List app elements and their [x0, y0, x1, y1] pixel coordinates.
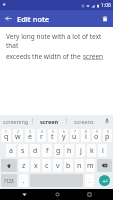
button[interactable]: v — [53, 159, 62, 172]
button[interactable]: screens — [67, 115, 100, 127]
staticText: e — [28, 132, 32, 142]
staticText: 9 — [96, 130, 98, 134]
button[interactable]: 6 — [59, 129, 68, 142]
staticText: s — [21, 146, 25, 156]
staticText: 4 — [41, 130, 43, 134]
button[interactable]: g — [54, 144, 63, 157]
staticText: a — [9, 146, 13, 156]
button[interactable]: a — [6, 144, 16, 157]
button[interactable]: c — [42, 159, 51, 172]
staticText: 0 — [107, 130, 109, 134]
button[interactable]: Delete note — [100, 14, 109, 23]
staticText: w — [15, 132, 21, 142]
staticText: x — [34, 161, 38, 171]
staticText: 2 — [17, 130, 19, 134]
button[interactable]: l — [98, 144, 107, 157]
staticText: u — [72, 132, 77, 142]
button[interactable]: x — [31, 159, 40, 172]
button[interactable]: k — [87, 144, 96, 157]
button[interactable]: 3 — [25, 129, 35, 142]
staticText: k — [90, 146, 94, 156]
staticText: 1:06 — [101, 2, 111, 9]
button[interactable]: screening — [0, 115, 32, 127]
button[interactable]: n — [75, 159, 84, 172]
staticText: Very long note with a lot of text that — [6, 32, 107, 50]
staticText: 7 — [74, 130, 76, 134]
button[interactable]: Recent apps — [81, 189, 97, 200]
button[interactable]: Enter — [96, 174, 112, 187]
button[interactable]: 7 — [70, 129, 79, 142]
staticText: z — [22, 161, 26, 171]
staticText: screens — [74, 118, 94, 125]
staticText: o — [94, 132, 99, 142]
staticText: 8 — [85, 130, 87, 134]
staticText: . — [89, 177, 91, 185]
staticText: 5 — [52, 130, 54, 134]
staticText: d — [33, 146, 38, 156]
button[interactable]: s — [18, 144, 28, 157]
button[interactable]: 0 — [103, 129, 112, 142]
button[interactable]: 8 — [81, 129, 90, 142]
staticText: screen — [40, 118, 59, 125]
button[interactable]: Very long note with a lot of text that — [0, 27, 113, 115]
button[interactable]: z — [19, 159, 29, 172]
staticText: b — [66, 161, 71, 171]
button[interactable]: j — [76, 144, 85, 157]
button[interactable]: h — [65, 144, 74, 157]
staticText: 3 — [29, 130, 31, 134]
staticText: y — [62, 132, 66, 142]
staticText: exceeds the width of the — [6, 52, 83, 61]
staticText: i — [85, 132, 87, 142]
button[interactable]: Shift — [1, 159, 17, 172]
button[interactable]: m — [86, 159, 95, 172]
staticText: r — [40, 132, 43, 142]
button[interactable]: 2 — [13, 129, 23, 142]
staticText: g — [56, 146, 61, 156]
button[interactable]: 1 — [1, 129, 11, 142]
staticText: j — [80, 146, 82, 156]
button[interactable]: d — [30, 144, 40, 157]
staticText: screen — [83, 52, 104, 61]
staticText: Edit note — [17, 14, 50, 24]
button[interactable]: f — [42, 144, 52, 157]
staticText: f — [46, 146, 49, 156]
button[interactable]: , — [19, 174, 28, 187]
staticText: c — [45, 161, 49, 171]
button[interactable]: Backspace — [97, 159, 112, 172]
button[interactable]: screen — [33, 115, 66, 127]
button[interactable]: Voice input — [100, 115, 113, 127]
staticText: t — [51, 132, 54, 142]
staticText: 1 — [5, 130, 7, 134]
staticText: l — [102, 146, 104, 156]
staticText: n — [77, 161, 82, 171]
button[interactable]: Back — [16, 189, 32, 200]
staticText: p — [105, 132, 110, 142]
staticText: screening — [3, 118, 29, 125]
staticText: , — [23, 177, 25, 185]
button[interactable]: 9 — [92, 129, 101, 142]
staticText: 6 — [63, 130, 65, 134]
button[interactable]: . — [85, 174, 94, 187]
staticText: q — [4, 132, 9, 142]
button[interactable]: b — [64, 159, 73, 172]
button[interactable]: 5 — [48, 129, 57, 142]
button[interactable]: ?123 — [1, 174, 17, 187]
button[interactable]: Back — [4, 14, 13, 23]
staticText: v — [56, 161, 60, 171]
staticText: m — [87, 161, 94, 171]
staticText: h — [67, 146, 72, 156]
button[interactable]: 4 — [37, 129, 46, 142]
button[interactable]: Home — [49, 189, 65, 200]
staticText: ?123 — [4, 178, 14, 184]
